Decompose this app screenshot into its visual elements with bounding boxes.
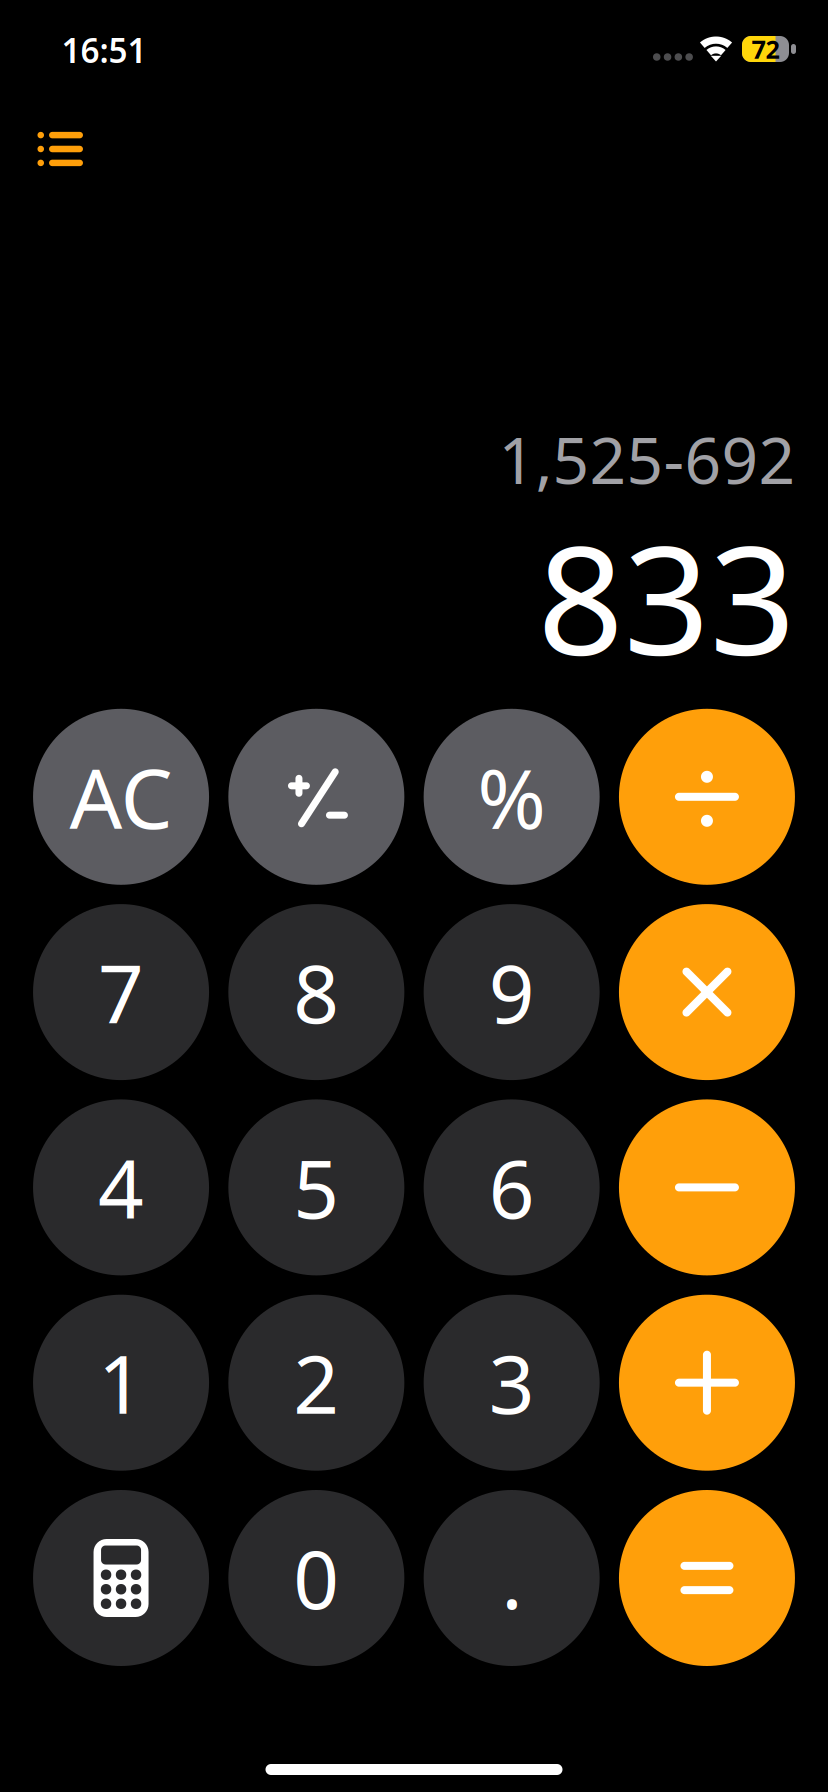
staticText: 1,525-692 [498, 417, 795, 502]
button[interactable]: Subtract [619, 1099, 795, 1275]
staticText: 9 [489, 939, 535, 1045]
staticText: 72 [751, 32, 779, 66]
button[interactable]: 4 [33, 1099, 209, 1275]
staticText: % [477, 742, 546, 852]
button[interactable]: Decimal point [424, 1490, 600, 1666]
staticText: 1 [98, 1330, 144, 1436]
button[interactable]: 6 [424, 1099, 600, 1275]
staticText: 7 [98, 939, 144, 1045]
button[interactable]: 0 [228, 1490, 404, 1666]
button[interactable]: Percent [424, 709, 600, 885]
staticText: AC [70, 742, 173, 852]
button[interactable]: 2 [228, 1295, 404, 1471]
staticText: 5 [293, 1134, 339, 1240]
staticText: 0 [293, 1525, 339, 1631]
button[interactable]: 5 [228, 1099, 404, 1275]
button[interactable]: History [0, 116, 129, 182]
staticText: 6 [489, 1134, 535, 1240]
button[interactable]: 7 [33, 904, 209, 1080]
staticText: 2 [293, 1330, 339, 1436]
button[interactable]: Add [619, 1295, 795, 1471]
button[interactable]: All clear [33, 709, 209, 885]
staticText: 833 [537, 497, 795, 697]
button[interactable]: Divide [619, 709, 795, 885]
button[interactable]: 1 [33, 1295, 209, 1471]
staticText: . [501, 1525, 522, 1631]
staticText: 3 [489, 1330, 535, 1436]
button[interactable]: Multiply [619, 904, 795, 1080]
button[interactable]: 9 [424, 904, 600, 1080]
staticText: 8 [293, 939, 339, 1045]
button[interactable]: Calculator mode [33, 1490, 209, 1666]
button[interactable]: 8 [228, 904, 404, 1080]
button[interactable]: 3 [424, 1295, 600, 1471]
staticText: 16:51 [61, 28, 146, 72]
staticText: 4 [98, 1134, 144, 1240]
button[interactable]: Toggle sign [228, 709, 404, 885]
button[interactable]: Equals [619, 1490, 795, 1666]
